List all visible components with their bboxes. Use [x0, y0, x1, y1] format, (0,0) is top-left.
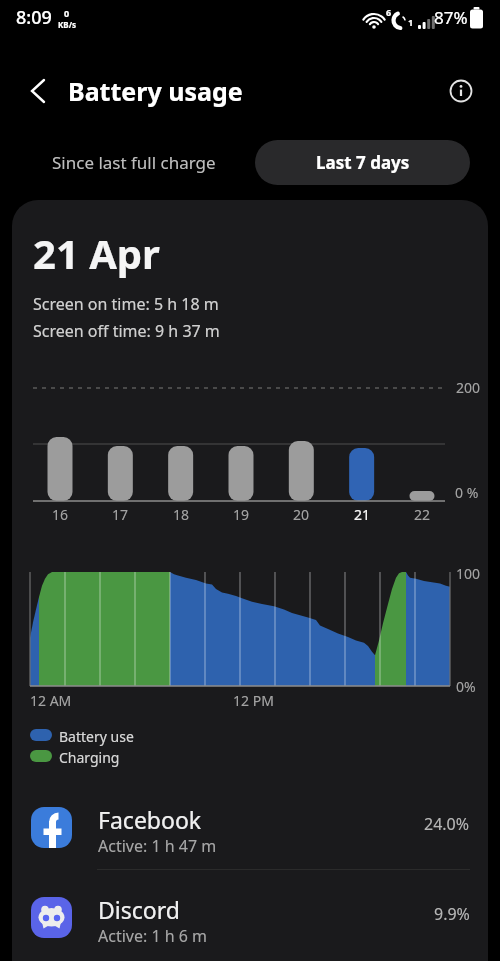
staticText: 17 [112, 505, 129, 524]
staticText: 0 % [455, 483, 479, 502]
staticText: Screen on time: 5 h 18 m [33, 293, 219, 315]
staticText: 9.9% [434, 903, 470, 925]
button[interactable]: Discord [12, 878, 488, 961]
staticText: 87% [434, 6, 468, 29]
staticText: 18 [173, 505, 190, 524]
staticText: Charging [59, 748, 120, 767]
staticText: KB/s [58, 19, 76, 30]
staticText: 20 [293, 505, 310, 524]
staticText: Last 7 days [316, 151, 410, 174]
staticText: 21 [354, 505, 371, 524]
staticText: 22 [414, 505, 431, 524]
button[interactable]: Since last full charge [14, 140, 254, 185]
staticText: 21 Apr [33, 226, 160, 280]
staticText: Facebook [98, 804, 202, 835]
staticText: 12 PM [233, 691, 274, 710]
staticText: Since last full charge [52, 151, 216, 174]
staticText: 8:09 [16, 5, 52, 30]
staticText: 100 [456, 564, 481, 583]
staticText: Screen off time: 9 h 37 m [33, 320, 220, 342]
staticText: 24.0% [424, 813, 470, 835]
staticText: 200 [456, 378, 481, 397]
staticText: Battery use [59, 727, 134, 746]
staticText: 0% [456, 677, 476, 696]
staticText: 16 [52, 505, 69, 524]
staticText: 6 [386, 6, 392, 18]
button[interactable] [444, 74, 478, 108]
staticText: Active: 1 h 47 m [98, 835, 217, 857]
staticText: 19 [233, 505, 250, 524]
staticText: 1 [408, 16, 414, 28]
staticText: Discord [98, 894, 180, 925]
button[interactable] [18, 76, 58, 106]
staticText: 0 [64, 7, 70, 19]
staticText: Battery usage [68, 74, 243, 108]
staticText: Active: 1 h 6 m [98, 925, 208, 947]
button[interactable]: Last 7 days [255, 140, 470, 185]
button[interactable]: Facebook [12, 788, 488, 878]
staticText: 12 AM [30, 691, 72, 710]
